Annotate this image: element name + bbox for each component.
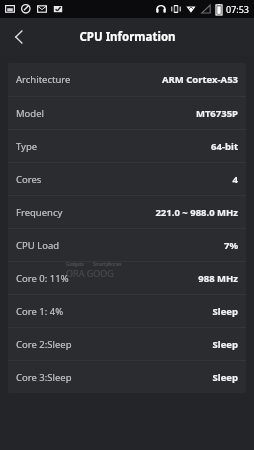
button[interactable]: Core 0: 11% — [8, 262, 246, 294]
button[interactable]: Back — [0, 18, 38, 56]
staticText: 988 MHz — [198, 272, 238, 285]
staticText: Frequency — [16, 206, 63, 219]
staticText: ORA GOOG — [66, 267, 114, 279]
staticText: 221.0 ~ 988.0 MHz — [155, 206, 238, 219]
staticText: Core 2:Sleep — [16, 338, 72, 351]
staticText: Model — [16, 107, 45, 120]
staticText: Architecture — [16, 73, 71, 86]
staticText: Sleep — [212, 338, 238, 351]
button[interactable]: CPU Load — [8, 229, 246, 261]
button[interactable]: Cores — [8, 163, 246, 195]
staticText: 64-bit — [211, 140, 238, 153]
button[interactable]: Frequency — [8, 196, 246, 228]
staticText: MT6735P — [195, 107, 238, 120]
staticText: 07:53 — [226, 3, 250, 15]
staticText: Sleep — [212, 305, 238, 318]
staticText: Type — [16, 140, 38, 153]
staticText: Sleep — [212, 371, 238, 384]
button[interactable]: Core 2:Sleep — [8, 328, 246, 360]
staticText: Core 1: 4% — [16, 305, 64, 318]
staticText: Core 3:Sleep — [16, 371, 72, 384]
staticText: ARM Cortex-A53 — [161, 73, 238, 86]
staticText: 4 — [232, 173, 238, 186]
button[interactable]: Model — [8, 97, 246, 129]
button[interactable]: Core 3:Sleep — [8, 361, 246, 393]
staticText: CPU Information — [79, 29, 176, 45]
button[interactable]: Core 1: 4% — [8, 295, 246, 327]
staticText: 7% — [223, 239, 238, 252]
staticText: CPU Load — [16, 239, 60, 252]
button[interactable]: Architecture — [8, 63, 246, 96]
button[interactable]: Type — [8, 130, 246, 162]
staticText: Cores — [16, 173, 42, 186]
staticText: Gadgets Smartphones — [66, 261, 122, 267]
staticText: Core 0: 11% — [16, 272, 69, 285]
